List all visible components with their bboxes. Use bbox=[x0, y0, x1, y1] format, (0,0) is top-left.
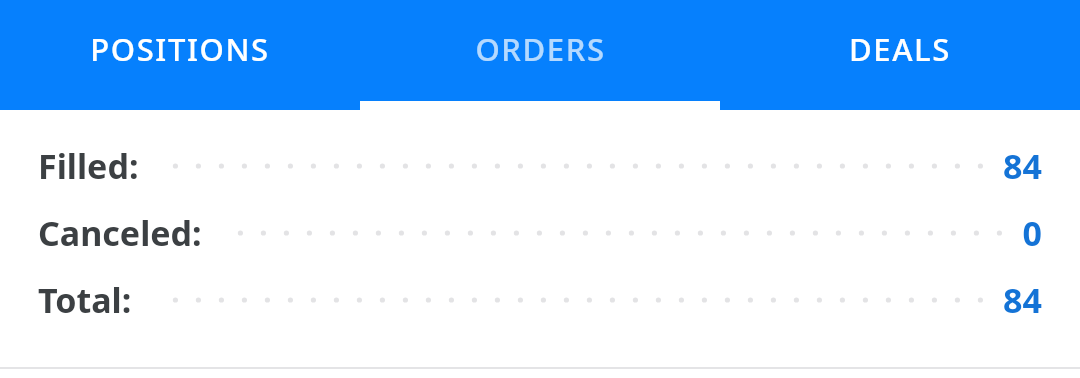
staticText: DEALS bbox=[849, 28, 951, 70]
staticText: POSITIONS bbox=[90, 28, 270, 70]
button[interactable]: Canceled: bbox=[0, 199, 1080, 266]
button[interactable]: Filled: bbox=[0, 132, 1080, 199]
button[interactable]: DEALS bbox=[720, 0, 1080, 110]
staticText: Canceled: bbox=[38, 210, 202, 256]
staticText: 84 bbox=[1003, 143, 1042, 189]
staticText: 0 bbox=[1022, 210, 1042, 256]
staticText: Total: bbox=[38, 277, 132, 323]
staticText: Filled: bbox=[38, 143, 139, 189]
staticText: 84 bbox=[1003, 277, 1042, 323]
button[interactable]: ORDERS bbox=[360, 0, 720, 110]
button[interactable]: POSITIONS bbox=[0, 0, 360, 110]
button[interactable]: Total: bbox=[0, 266, 1080, 333]
staticText: ORDERS bbox=[475, 28, 606, 70]
